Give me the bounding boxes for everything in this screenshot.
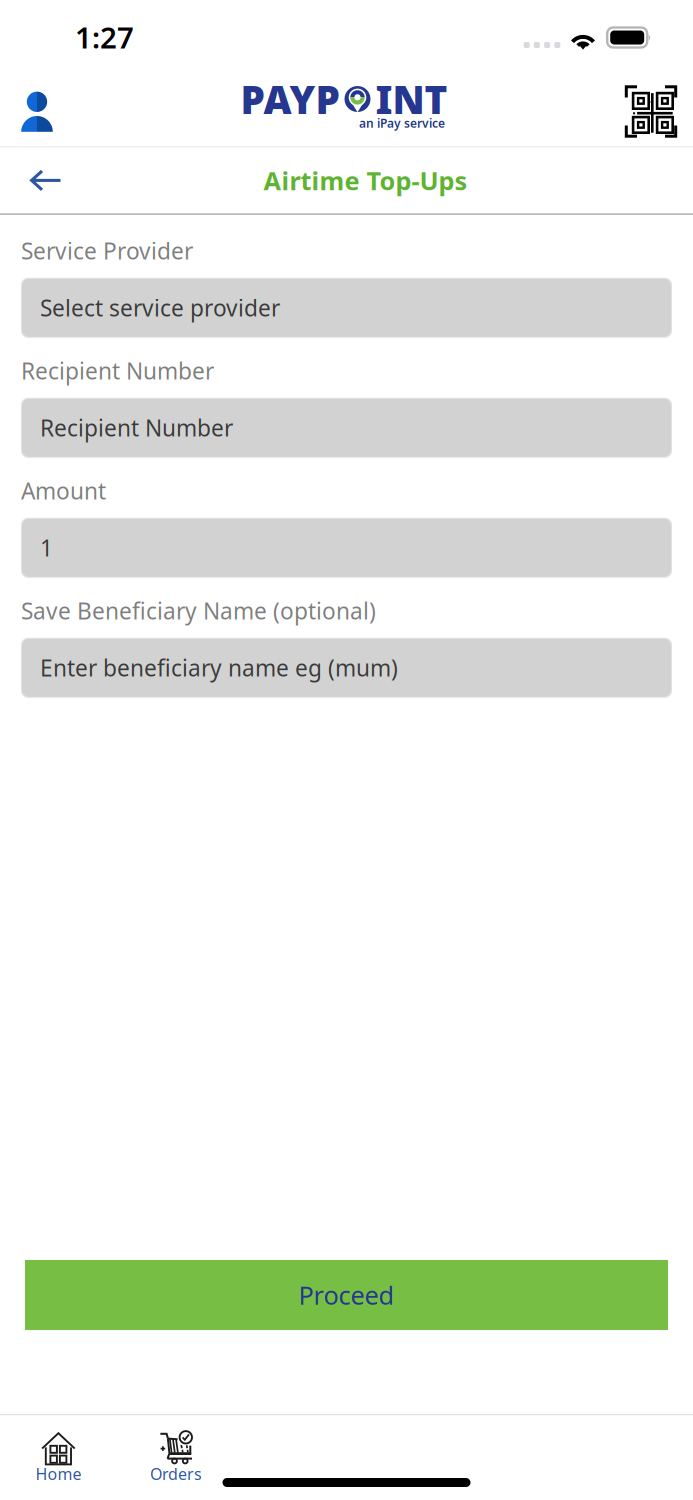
- staticText: Airtime Top-Ups: [263, 164, 467, 197]
- staticText: Save Beneficiary Name (optional): [21, 596, 376, 626]
- button[interactable]: Home: [8, 1415, 109, 1486]
- staticText: Select service provider: [40, 293, 280, 323]
- staticText: PAYP: [240, 73, 339, 125]
- staticText: Recipient Number: [40, 413, 233, 443]
- button[interactable]: Recipient Number: [21, 398, 672, 458]
- staticText: Enter beneficiary name eg (mum): [40, 653, 398, 683]
- staticText: Home: [35, 1463, 81, 1484]
- button[interactable]: Back: [17, 151, 75, 209]
- button[interactable]: Enter beneficiary name eg (mum): [21, 638, 672, 698]
- staticText: 1:27: [75, 17, 134, 56]
- button[interactable]: Select service provider: [21, 278, 672, 338]
- button[interactable]: Orders: [109, 1415, 243, 1486]
- staticText: 1: [40, 533, 53, 563]
- staticText: Amount: [21, 476, 106, 506]
- staticText: Recipient Number: [21, 356, 214, 386]
- button[interactable]: 1: [21, 518, 672, 578]
- staticText: Orders: [150, 1463, 202, 1484]
- staticText: Service Provider: [21, 236, 193, 266]
- button[interactable]: Proceed: [25, 1260, 668, 1330]
- staticText: INT: [375, 73, 447, 125]
- button[interactable]: Profile: [8, 68, 66, 146]
- button[interactable]: Scan QR code: [622, 68, 680, 146]
- staticText: an iPay service: [359, 115, 445, 131]
- staticText: Proceed: [298, 1278, 394, 1312]
